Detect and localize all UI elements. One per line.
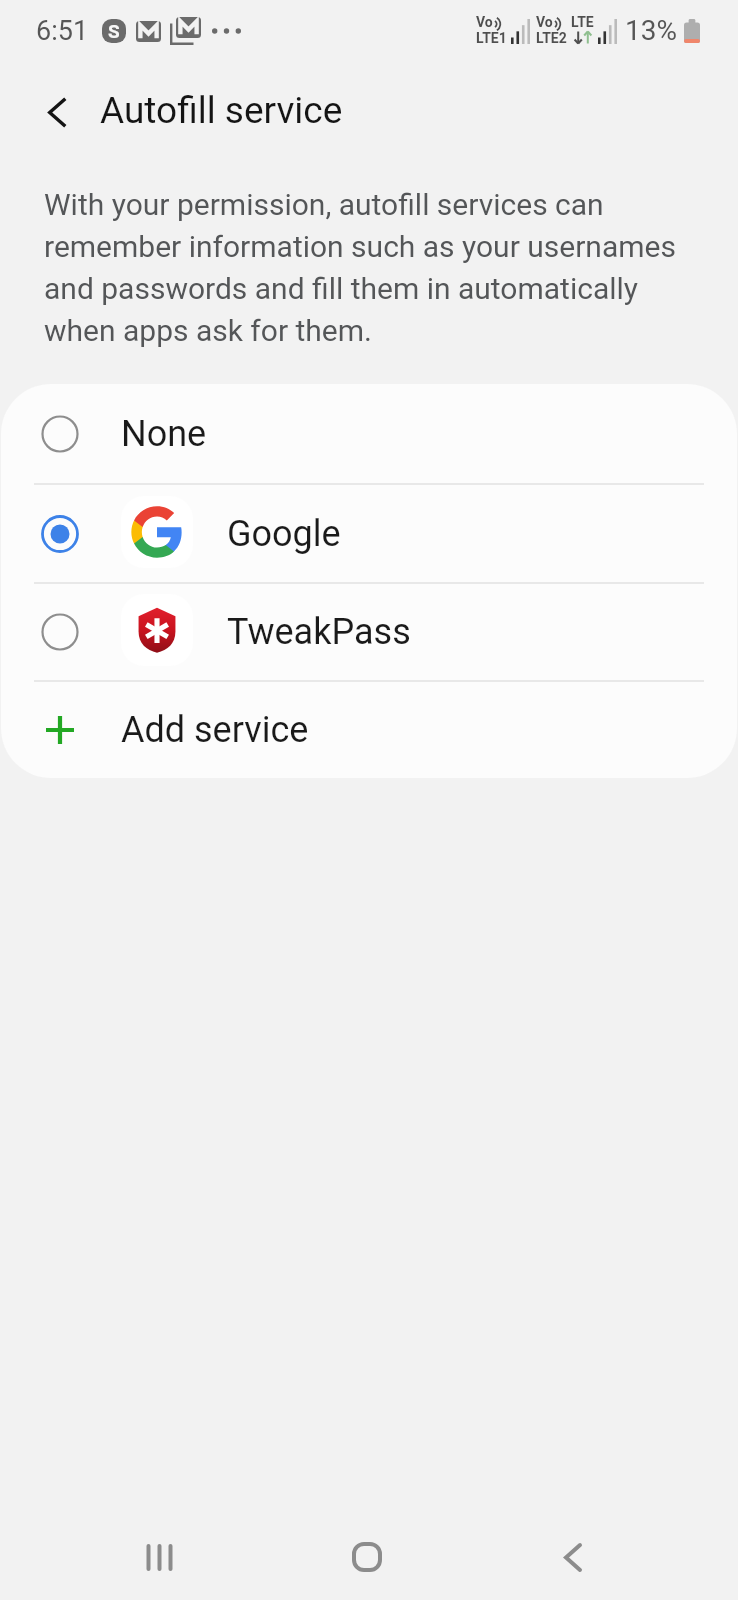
button[interactable]: Add service xyxy=(1,682,737,778)
staticText: Autofill service xyxy=(100,89,343,132)
staticText: LTE xyxy=(571,14,594,30)
button[interactable]: Home xyxy=(304,1514,429,1600)
button[interactable]: None xyxy=(1,384,737,483)
staticText: TweakPass xyxy=(227,611,411,653)
staticText: With your permission, autofill services … xyxy=(44,187,676,349)
staticText: LTE1 xyxy=(476,30,507,46)
staticText: 6:51 xyxy=(36,15,89,47)
button[interactable]: Back xyxy=(510,1514,635,1600)
staticText: Vo xyxy=(476,14,493,30)
staticText: 13% xyxy=(625,14,677,47)
staticText: Add service xyxy=(121,709,309,751)
button[interactable]: Google xyxy=(1,485,737,582)
button[interactable]: Recent apps xyxy=(97,1514,222,1600)
button[interactable]: Navigate up xyxy=(25,80,89,144)
staticText: Google xyxy=(227,513,341,555)
staticText: LTE2 xyxy=(536,30,567,46)
staticText: S xyxy=(108,20,120,42)
staticText: None xyxy=(121,413,207,455)
staticText: Vo xyxy=(536,14,553,30)
button[interactable]: TweakPass xyxy=(1,584,737,680)
